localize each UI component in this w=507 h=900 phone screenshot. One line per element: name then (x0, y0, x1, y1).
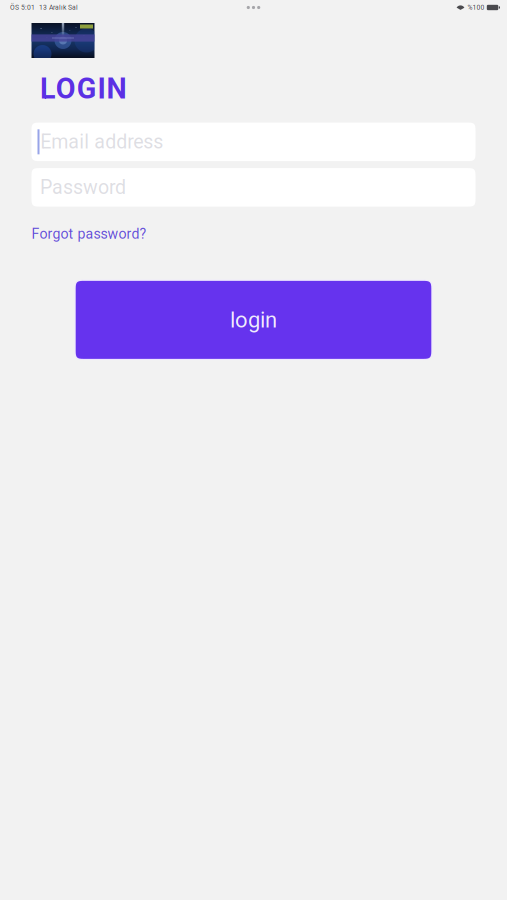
staticText: ÖS 5:01 13 Aralık Sal (10, 3, 78, 11)
staticText: login (230, 307, 277, 333)
staticText: Forgot password? (31, 226, 146, 242)
staticText: Email address (40, 130, 163, 153)
button[interactable]: login (74, 280, 432, 360)
staticText: Password (40, 176, 126, 199)
button[interactable]: Password (31, 168, 475, 207)
button[interactable]: Forgot password? (31, 218, 154, 250)
staticText: LOGIN (40, 72, 126, 106)
staticText: %100 (467, 3, 484, 11)
button[interactable]: Email address (31, 123, 475, 161)
